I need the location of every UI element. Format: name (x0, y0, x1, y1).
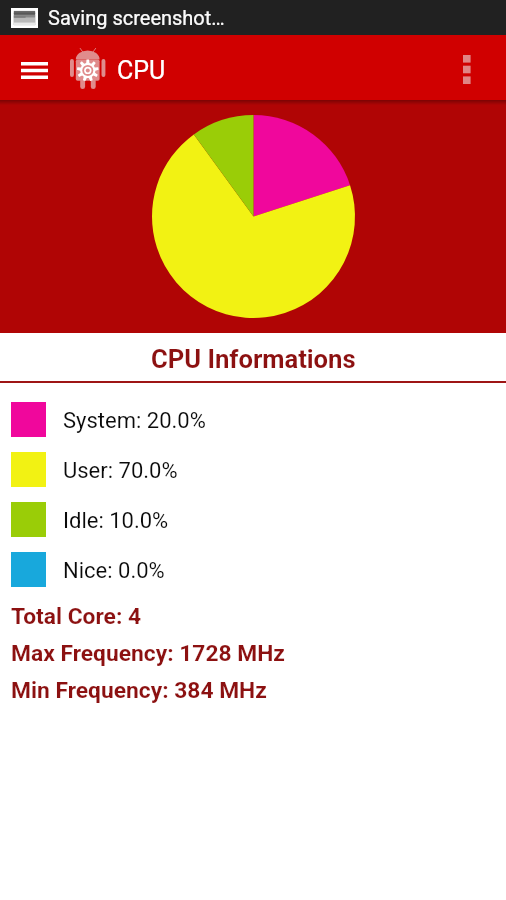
button[interactable]: Open navigation drawer (0, 35, 66, 100)
button[interactable]: Total Core: 4 (0, 598, 506, 635)
staticText: Idle: 10.0% (63, 508, 169, 534)
button[interactable]: Idle: 10.0% (0, 494, 506, 544)
staticText: Saving screenshot… (48, 6, 225, 29)
staticText: Nice: 0.0% (63, 558, 165, 584)
staticText: Total Core: 4 (11, 603, 142, 630)
staticText: CPU Informations (151, 344, 356, 374)
button[interactable]: More options (428, 35, 506, 100)
button[interactable]: System: 20.0% (0, 394, 506, 444)
staticText: System: 20.0% (63, 408, 206, 434)
staticText: Min Frequency: 384 MHz (11, 677, 267, 704)
button[interactable]: Min Frequency: 384 MHz (0, 672, 506, 709)
staticText: Max Frequency: 1728 MHz (11, 640, 285, 667)
staticText: User: 70.0% (63, 458, 178, 484)
button[interactable]: Max Frequency: 1728 MHz (0, 635, 506, 672)
button[interactable]: User: 70.0% (0, 444, 506, 494)
button[interactable]: Nice: 0.0% (0, 544, 506, 594)
staticText: CPU (117, 56, 166, 85)
